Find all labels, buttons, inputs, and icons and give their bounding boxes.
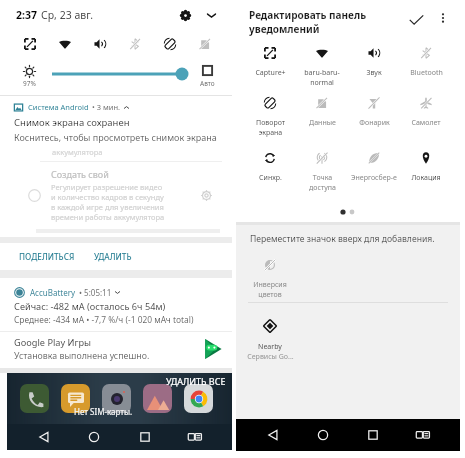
button[interactable]: Camera [102,384,131,413]
button[interactable]: AccuBattery [0,278,232,331]
staticText: в каждой игре для увеличения [51,202,164,212]
button[interactable]: Messages [61,384,90,413]
button[interactable]: Capture plus [12,29,47,58]
staticText: Инверсия цветов [253,280,287,300]
button[interactable]: Инверсия цветов [244,257,296,300]
staticText: аккумулятора [52,147,103,157]
staticText: уведомлений [249,22,320,36]
staticText: AccuBattery [30,287,76,298]
staticText: ПОДЕЛИТЬСЯ [19,251,75,262]
button[interactable]: Settings [176,6,194,24]
staticText: Поворот экрана [256,118,285,138]
staticText: УДАЛИТЬ [94,251,132,262]
staticText: Редактировать панель [249,8,367,22]
button[interactable]: Auto brightness [196,65,218,88]
button[interactable]: Done [404,8,428,32]
button[interactable]: Wi-Fi [47,29,82,58]
staticText: Capture+ [255,68,286,78]
button[interactable]: Локация [400,150,452,183]
button[interactable]: Auto-rotate [152,29,187,58]
staticText: • 5:05:11 [79,287,112,298]
staticText: Система Android [28,102,89,112]
button[interactable]: Home [310,422,336,448]
staticText: Среднее: -434 мА • -7,7 %/ч (-1 020 мАч … [14,314,194,325]
button[interactable]: baru-baru- normal [296,45,348,88]
button[interactable]: Back [31,424,57,450]
staticText: Самолет [411,118,441,128]
button[interactable]: Capture+ [244,45,296,78]
staticText: Звук [366,68,382,78]
staticText: • 3 мин. [92,102,121,112]
button[interactable]: Collapse [202,6,220,24]
staticText: Коснитесь, чтобы просмотреть снимок экра… [14,131,217,143]
staticText: Данные [309,118,336,128]
staticText: 2:37 [16,8,37,22]
button[interactable]: Google Play Игры [0,332,232,368]
staticText: Сейчас: -482 мА (осталось 6ч 54м) [14,300,166,313]
staticText: Энергосбер-е [351,173,397,183]
staticText: Сервисы Go... [247,352,294,362]
button[interactable]: Back [260,422,286,448]
staticText: Bluetooth [410,68,443,78]
staticText: и количество кадров в секунду [51,192,164,202]
staticText: Ср, 23 авг. [41,8,94,22]
button[interactable]: Split screen [410,422,436,448]
staticText: Снимок экрана сохранен [14,116,130,129]
button[interactable]: Recents [132,424,158,450]
staticText: Создать свой [51,168,109,180]
button[interactable]: Brightness slider [52,65,188,83]
button[interactable]: Phone [20,384,49,413]
button[interactable]: Home [81,424,107,450]
button[interactable]: Nearby [244,319,296,362]
button[interactable]: Brightness [16,65,42,88]
button[interactable]: Split screen [182,424,208,450]
staticText: Google Play Игры [14,336,92,349]
button[interactable]: Точка доступа [296,150,348,193]
staticText: Точка доступа [309,173,336,193]
staticText: Синхр. [259,173,282,183]
staticText: Регулирует разрешение видео [51,182,163,192]
button[interactable]: УДАЛИТЬ [88,244,138,269]
staticText: Переместите значок вверх для добавления. [250,233,435,245]
button[interactable]: Chrome [184,384,213,413]
button[interactable]: УДАЛИТЬ ВСЕ [162,371,230,391]
staticText: Авто [200,79,215,88]
button[interactable]: Поворот экрана [244,95,296,138]
button[interactable]: Bluetooth off [117,29,152,58]
button[interactable]: Звук [348,45,400,78]
staticText: baru-baru- normal [304,68,340,88]
button[interactable]: Фонарик [348,95,400,128]
button[interactable]: Данные [296,95,348,128]
button[interactable]: Самолет [400,95,452,128]
button[interactable]: Энергосбер-е [348,150,400,183]
staticText: Установка выполнена успешно. [14,350,150,362]
button[interactable]: Sound [82,29,117,58]
button[interactable]: More options [433,8,453,28]
button[interactable]: Система Android [0,102,232,143]
staticText: Фонарик [359,118,390,128]
button[interactable]: Mobile data off [187,29,222,58]
staticText: времени работы аккумулятора [51,212,165,222]
staticText: УДАЛИТЬ ВСЕ [166,375,226,387]
staticText: 97% [23,79,36,88]
staticText: Nearby [258,342,282,352]
button[interactable]: Bluetooth [400,45,452,78]
button[interactable]: Recents [360,422,386,448]
staticText: Нет SIM-карты. [74,406,133,417]
button[interactable]: Синхр. [244,150,296,183]
staticText: Локация [411,173,441,183]
button[interactable]: Gallery [143,384,172,413]
button[interactable]: ПОДЕЛИТЬСЯ [13,244,81,269]
